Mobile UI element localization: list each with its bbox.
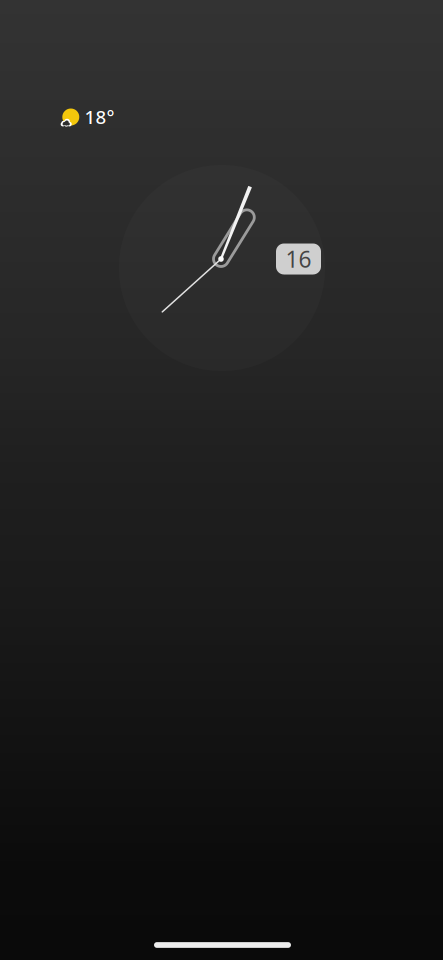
- staticText: 18°: [84, 104, 114, 129]
- staticText: 16: [285, 244, 311, 274]
- button[interactable]: 16: [276, 243, 321, 274]
- button[interactable]: Weather, 18 degrees: [0, 0, 443, 960]
